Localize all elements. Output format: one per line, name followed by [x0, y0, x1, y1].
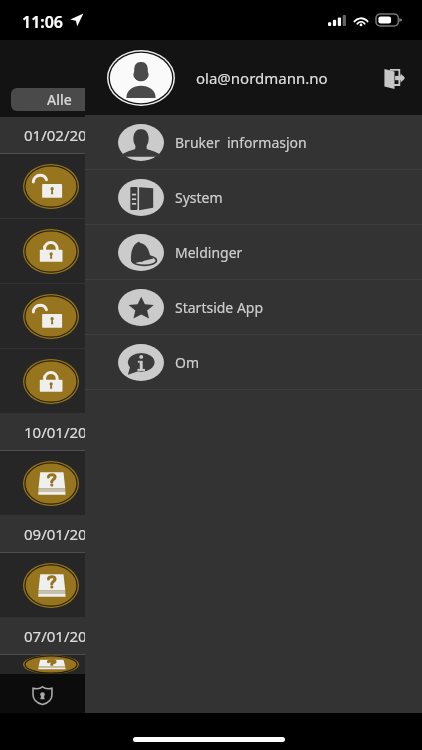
staticText: 07/01/2021	[24, 626, 104, 646]
button[interactable]	[0, 284, 422, 348]
staticText: Bruker informasjon	[175, 133, 307, 152]
button[interactable]	[0, 655, 422, 674]
staticText: 01/02/2021	[24, 125, 104, 145]
button[interactable]: Security	[22, 682, 63, 708]
button[interactable]: Bruker informasjon	[85, 115, 422, 169]
button[interactable]: Om	[85, 335, 422, 389]
button[interactable]: Alle	[11, 88, 101, 111]
button[interactable]	[0, 349, 422, 413]
button[interactable]	[0, 154, 422, 218]
button[interactable]	[0, 219, 422, 283]
staticText: System	[175, 188, 223, 207]
staticText: Meldinger	[175, 243, 243, 262]
staticText: Startside App	[175, 298, 264, 317]
button[interactable]: Log out	[375, 60, 413, 98]
staticText: 10/01/2021	[24, 422, 104, 442]
button[interactable]	[0, 451, 422, 515]
button[interactable]: System	[85, 170, 422, 224]
button[interactable]	[0, 553, 422, 617]
staticText: Om	[175, 353, 200, 372]
staticText: 09/01/2021	[24, 524, 104, 544]
staticText: ola@nordmann.no	[196, 68, 328, 88]
button[interactable]: Startside App	[85, 280, 422, 334]
button[interactable]: Meldinger	[85, 225, 422, 279]
staticText: Alle	[47, 90, 72, 109]
staticText: 11:06	[22, 11, 64, 33]
